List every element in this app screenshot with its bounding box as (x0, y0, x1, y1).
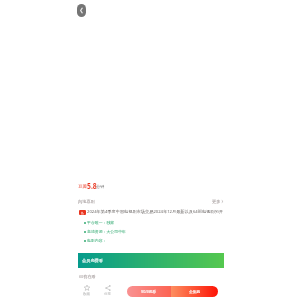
button[interactable]: Share (104, 285, 111, 296)
button[interactable]: 全集购 (171, 286, 218, 297)
button[interactable]: Favorite (83, 285, 90, 296)
staticText: 分享 (104, 292, 111, 296)
staticText: ¥0.9观看 (141, 289, 157, 294)
staticText: 2024年第4季度中国电视剧市场交易2024年12月最新以及64部电视剧的开机点… (87, 209, 225, 215)
staticText: 高清资源：大公司中年 (87, 229, 126, 234)
staticText: 热 (81, 211, 84, 214)
staticText: 收藏 (83, 292, 90, 296)
staticText: 已有在看 (79, 274, 96, 279)
staticText: 内地喜剧 (78, 199, 95, 204)
staticText: 更多 (212, 199, 221, 204)
staticText: 会员免费看 (82, 258, 103, 263)
button[interactable]: ¥0.9观看 (127, 286, 171, 297)
staticText: 平台唯一：独家 (87, 220, 115, 225)
staticText: 全集购 (189, 289, 201, 294)
button[interactable]: 会员免费看 (78, 253, 224, 268)
staticText: 分钟 (96, 184, 105, 189)
staticText: 电影内容： (87, 238, 107, 243)
staticText: 5.8 (87, 180, 97, 191)
button[interactable]: 更多 (212, 199, 224, 204)
staticText: 豆瓣 (78, 184, 88, 190)
button[interactable]: Back (77, 4, 86, 17)
